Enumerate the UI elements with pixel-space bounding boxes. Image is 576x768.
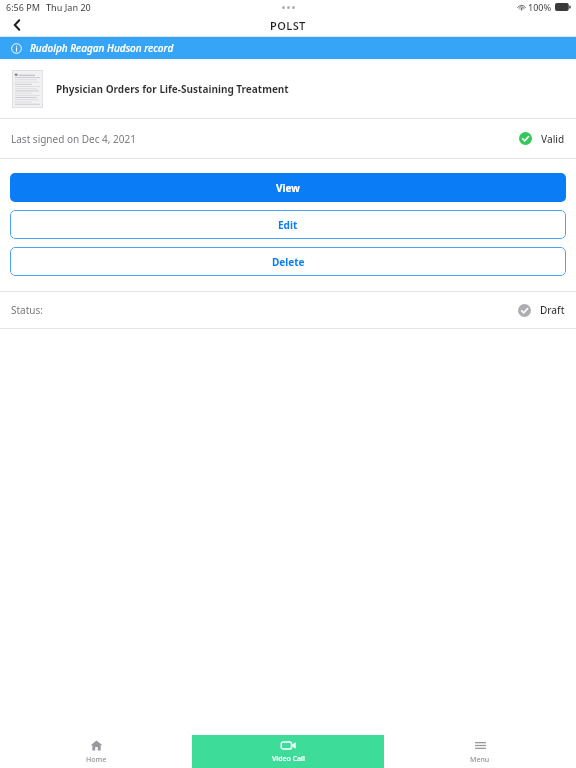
button[interactable]: Edit (10, 210, 566, 239)
staticText: 6:56 PM (6, 1, 40, 13)
staticText: Home (86, 755, 107, 765)
staticText: Physician Orders for Life-Sustaining Tre… (56, 82, 289, 96)
button[interactable]: View (10, 173, 566, 202)
staticText: Status: (11, 303, 43, 317)
button[interactable]: Home (0, 735, 192, 768)
button[interactable]: Rudolph Reagan Hudson record (0, 37, 576, 59)
staticText: Last signed on Dec 4, 2021 (11, 132, 136, 146)
staticText: 100% (528, 1, 552, 13)
button[interactable]: Video Call (192, 735, 384, 768)
staticText: View (276, 181, 300, 195)
staticText: Video Call (272, 754, 305, 764)
staticText: Rudolph Reagan Hudson record (30, 41, 174, 55)
staticText: Menu (470, 755, 490, 765)
staticText: Valid (541, 132, 565, 146)
button[interactable]: Back (0, 14, 34, 36)
button[interactable]: Delete (10, 247, 566, 276)
staticText: POLST (270, 18, 306, 33)
button[interactable]: Physician Orders for Life-Sustaining Tre… (0, 59, 576, 118)
button[interactable]: Menu (384, 735, 576, 768)
staticText: Draft (540, 303, 565, 317)
staticText: Delete (272, 255, 305, 269)
staticText: Edit (278, 218, 298, 232)
staticText: Thu Jan 20 (46, 1, 91, 13)
